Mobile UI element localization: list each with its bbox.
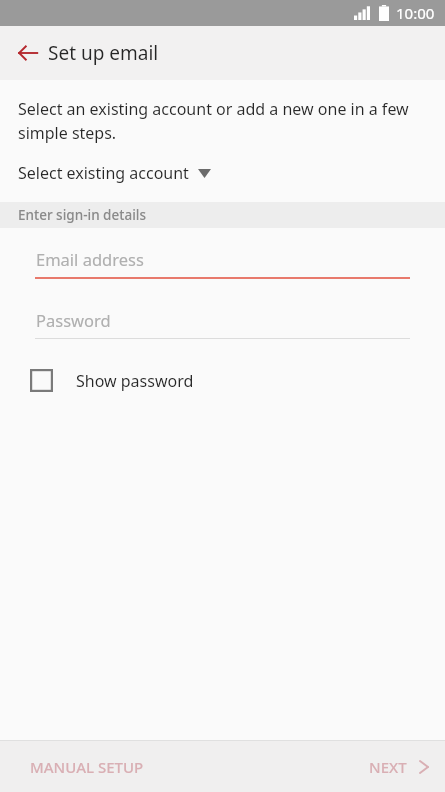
button[interactable]: NEXT bbox=[351, 745, 445, 789]
staticText: Show password bbox=[76, 370, 194, 392]
button[interactable]: Show password bbox=[0, 361, 445, 400]
staticText: Email address bbox=[36, 248, 144, 270]
staticText: Select an existing account or add a new … bbox=[18, 98, 419, 144]
staticText: Enter sign-in details bbox=[18, 206, 146, 224]
button[interactable]: Password bbox=[0, 309, 445, 339]
staticText: NEXT bbox=[369, 757, 407, 777]
button[interactable]: MANUAL SETUP bbox=[0, 745, 162, 789]
staticText: Password bbox=[36, 309, 111, 331]
staticText: 10:00 bbox=[396, 3, 435, 23]
button[interactable]: Select existing account bbox=[0, 160, 445, 190]
button[interactable]: Back bbox=[8, 33, 48, 73]
button[interactable]: Email address bbox=[0, 248, 445, 279]
staticText: Set up email bbox=[48, 40, 159, 66]
staticText: MANUAL SETUP bbox=[30, 757, 144, 777]
staticText: Select existing account bbox=[18, 162, 189, 184]
